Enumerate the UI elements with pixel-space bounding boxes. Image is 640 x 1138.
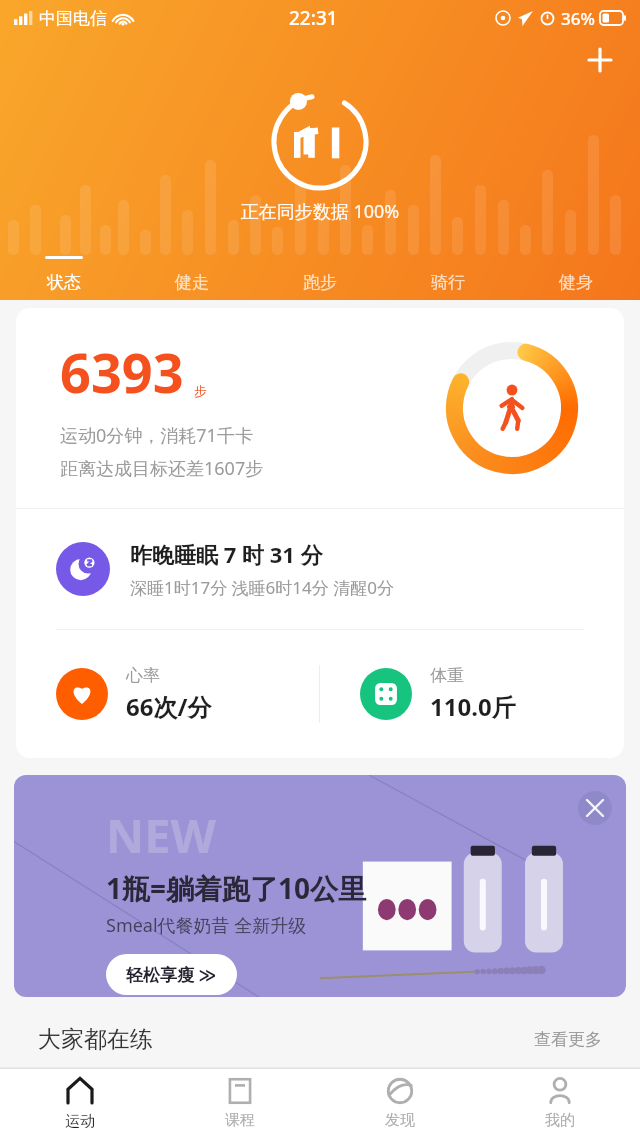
button[interactable]: Add (578, 38, 622, 82)
staticText: 大家都在练 (38, 1025, 153, 1054)
staticText: 课程 (225, 1111, 255, 1130)
button[interactable]: 发现 (320, 1069, 480, 1138)
button[interactable]: 状态 (0, 250, 128, 298)
staticText: 6393 (60, 335, 184, 409)
button[interactable]: NEW (14, 775, 626, 997)
button[interactable]: 昨晚睡眠 7 时 31 分 (56, 509, 624, 629)
button[interactable]: Close ad (578, 791, 612, 825)
staticText: 步 (194, 383, 207, 399)
staticText: 22:31 (289, 5, 338, 31)
button[interactable]: 轻松享瘦 ≫ (106, 954, 237, 995)
button[interactable]: 课程 (160, 1069, 320, 1138)
staticText: 运动0分钟，消耗71千卡 (60, 423, 253, 448)
button[interactable]: 我的 (480, 1069, 640, 1138)
staticText: 运动 (65, 1112, 95, 1131)
staticText: 深睡1时17分 浅睡6时14分 清醒0分 (130, 576, 394, 599)
staticText: NEW (106, 803, 216, 867)
staticText: 我的 (545, 1111, 575, 1130)
staticText: 1瓶=躺着跑了10公里 (106, 869, 367, 907)
staticText: 发现 (385, 1111, 415, 1130)
staticText: Smeal代餐奶昔 全新升级 (106, 913, 307, 938)
staticText: 骑行 (431, 272, 465, 293)
staticText: 健身 (559, 272, 593, 293)
button[interactable]: 运动 (0, 1069, 160, 1138)
button[interactable]: 骑行 (384, 250, 512, 298)
button[interactable]: 大家都在练 (38, 1011, 602, 1067)
staticText: 66次/分 (126, 690, 212, 723)
button[interactable]: 体重 (360, 630, 624, 758)
button[interactable]: 健身 (512, 250, 640, 298)
staticText: 正在同步数据 100% (0, 199, 640, 224)
button[interactable]: 心率 (56, 630, 319, 758)
staticText: 距离达成目标还差1607步 (60, 456, 264, 481)
staticText: 中国电信 (39, 8, 107, 29)
staticText: 状态 (47, 272, 81, 293)
staticText: 昨晚睡眠 7 时 31 分 (130, 539, 323, 569)
staticText: 36% (561, 7, 595, 30)
staticText: 轻松享瘦 ≫ (126, 963, 217, 986)
staticText: 心率 (126, 665, 160, 686)
staticText: 体重 (430, 665, 464, 686)
staticText: 健走 (175, 272, 209, 293)
button[interactable]: 健走 (128, 250, 256, 298)
button[interactable]: 跑步 (256, 250, 384, 298)
staticText: 查看更多 (534, 1029, 602, 1050)
button[interactable]: 6393 (16, 308, 624, 508)
staticText: 110.0斤 (430, 690, 516, 723)
staticText: 跑步 (303, 272, 337, 293)
